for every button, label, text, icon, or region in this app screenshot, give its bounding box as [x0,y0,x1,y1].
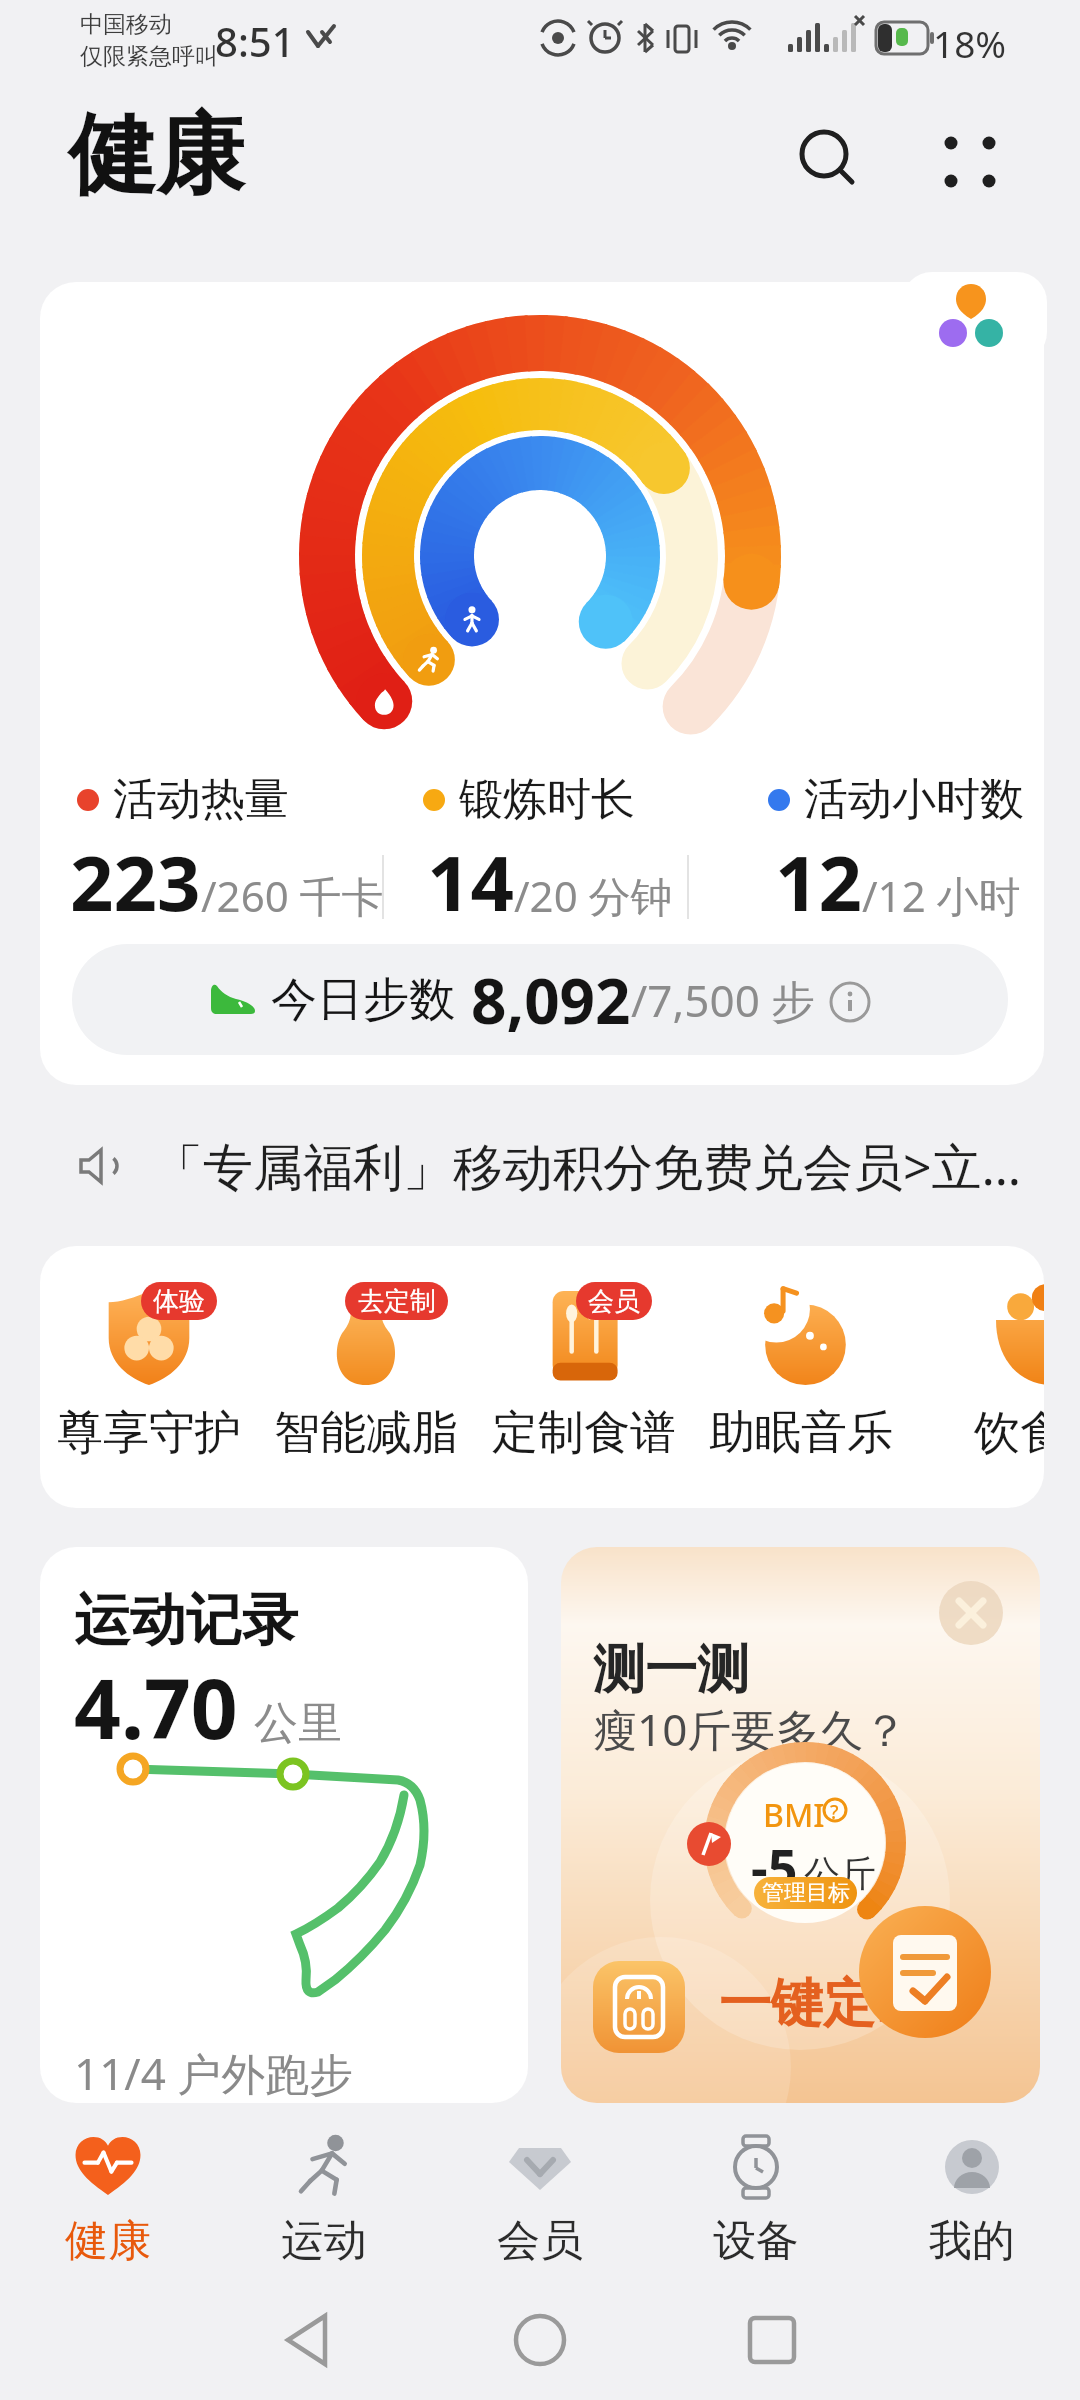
button[interactable]: 我的 [864,2130,1080,2280]
button[interactable] [1002,1288,1044,1388]
staticText: 中国移动 [80,10,172,39]
button[interactable] [593,1961,685,2053]
staticText: 瘦10斤要多久？ [593,1699,908,1759]
staticText: 8,092 [471,958,631,1042]
staticText: 8:51 [215,14,295,68]
button[interactable]: 设备 [648,2130,864,2280]
staticText: 活动热量 [113,772,289,827]
staticText: 223 [70,830,201,934]
button[interactable]: 「专属福利」移动积分免费兑会员>立… [40,1118,1040,1214]
staticText: 4.70 [74,1651,238,1763]
staticText: 健康 [65,2214,151,2268]
button[interactable] [902,272,1047,362]
staticText: 公斤 [804,1851,876,1896]
staticText: ? [830,1799,839,1825]
button[interactable]: 测一测 [561,1547,1040,2103]
staticText: 活动小时数 [804,772,1024,827]
button[interactable] [939,1581,1003,1645]
staticText: /12 小时 [862,867,1021,924]
staticText: 公里 [254,1696,342,1751]
staticText: 管理目标 [762,1879,850,1907]
button[interactable] [751,1288,851,1388]
button[interactable]: 运动 [216,2130,432,2280]
staticText: 运动记录 [74,1585,298,1656]
button[interactable] [938,130,1002,194]
staticText: 运动 [281,2214,367,2268]
button[interactable] [796,126,860,190]
staticText: BMI [763,1793,825,1837]
button[interactable] [316,1288,416,1388]
button[interactable]: 健康 [0,2130,216,2280]
staticText: 会员 [497,2214,583,2268]
staticText: 我的 [929,2214,1015,2268]
staticText: 锻炼时长 [459,772,635,827]
button[interactable] [828,978,872,1022]
staticText: /20 分钟 [514,867,673,924]
staticText: 定制食谱 [492,1404,676,1462]
staticText: /260 千卡 [201,867,384,924]
staticText: 12 [775,830,862,934]
staticText: 14 [427,830,514,934]
staticText: 会员 [588,1285,640,1318]
staticText: 饮食 [974,1404,1044,1462]
button[interactable] [534,1288,634,1388]
staticText: -5 [751,1831,798,1902]
staticText: 体验 [153,1285,205,1318]
button[interactable]: 会员 [432,2130,648,2280]
button[interactable] [99,1288,199,1388]
button[interactable]: 活动热量 [40,282,1044,1085]
staticText: 今日步数 [271,971,455,1029]
staticText: 仅限紧急呼叫 [80,42,218,71]
staticText: /7,500 步 [631,970,816,1030]
staticText: 18% [933,18,1007,68]
staticText: 「专属福利」移动积分免费兑会员>立… [153,1132,1022,1200]
staticText: 健康 [68,100,244,211]
button[interactable]: 运动记录 [40,1547,528,2103]
staticText: 助眠音乐 [709,1404,893,1462]
staticText: 测一测 [593,1637,749,1703]
button[interactable]: 今日步数 [72,944,1008,1055]
staticText: 智能减脂 [274,1404,458,1462]
staticText: 11/4 户外跑步 [74,2043,354,2103]
staticText: 一键定制 [719,1971,927,2037]
staticText: 尊享守护 [57,1404,241,1462]
staticText: 设备 [713,2214,799,2268]
staticText: 去定制 [358,1285,436,1318]
